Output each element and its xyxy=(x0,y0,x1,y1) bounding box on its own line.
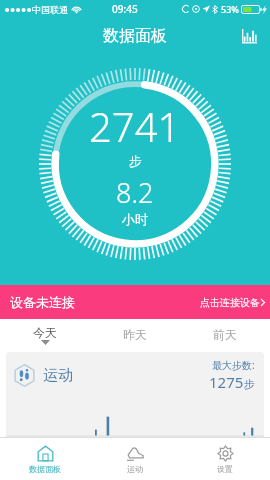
staticText: 53% xyxy=(221,3,239,15)
staticText: 数据面板 xyxy=(29,464,61,474)
staticText: 运动 xyxy=(127,464,143,474)
button[interactable]: 设置 xyxy=(180,438,270,480)
button[interactable]: 数据面板 xyxy=(0,438,90,480)
staticText: 数据面板 xyxy=(103,26,167,46)
staticText: 设备未连接 xyxy=(10,294,75,310)
staticText: 8.2 xyxy=(116,174,154,211)
staticText: 前天 xyxy=(213,327,237,342)
staticText: 1275 xyxy=(209,372,244,392)
staticText: 最大步数: xyxy=(212,358,255,372)
staticText: 步 xyxy=(129,153,142,169)
staticText: 步 xyxy=(244,377,255,391)
staticText: 昨天 xyxy=(123,327,147,342)
button[interactable]: 运动 xyxy=(90,438,180,480)
button[interactable]: 今天 xyxy=(0,319,90,352)
button[interactable]: Statistics xyxy=(235,22,263,50)
staticText: 小时 xyxy=(122,211,148,227)
button[interactable]: 昨天 xyxy=(90,319,180,352)
button[interactable]: 运动 xyxy=(6,352,264,437)
staticText: 中国联通 xyxy=(32,4,68,15)
button[interactable]: 前天 xyxy=(180,319,270,352)
staticText: 运动 xyxy=(43,366,73,385)
staticText: 设置 xyxy=(217,464,233,474)
staticText: 今天 xyxy=(33,325,57,340)
button[interactable]: 设备未连接 xyxy=(0,285,270,319)
staticText: 点击连接设备 xyxy=(200,296,260,309)
staticText: 2741 xyxy=(89,99,181,153)
staticText: 09:45 xyxy=(112,2,138,16)
